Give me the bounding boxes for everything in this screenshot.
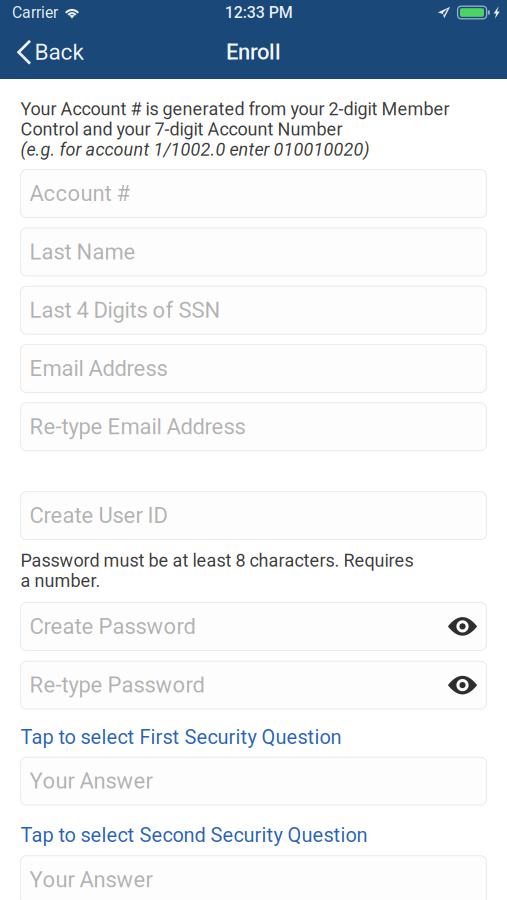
staticText: Create Password — [29, 613, 195, 639]
button[interactable]: Show Create Password — [447, 616, 477, 637]
button[interactable]: Tap to select Second Security Question — [20, 823, 486, 847]
staticText: Control and your 7-digit Account Number — [20, 119, 342, 140]
staticText: Enroll — [226, 39, 281, 65]
staticText: Your Answer — [29, 867, 152, 893]
staticText: Email Address — [29, 356, 167, 381]
staticText: Back — [34, 39, 83, 65]
staticText: Your Account # is generated from your 2-… — [20, 99, 449, 120]
button[interactable]: Show Re-type Password — [447, 675, 477, 695]
staticText: Last 4 Digits of SSN — [29, 297, 220, 323]
staticText: Re-type Email Address — [29, 414, 245, 440]
staticText: Last Name — [29, 239, 135, 265]
staticText: Account # — [29, 181, 130, 206]
staticText: a number. — [20, 570, 100, 591]
staticText: Your Answer — [29, 768, 152, 794]
staticText: Tap to select Second Security Question — [20, 823, 367, 847]
staticText: Carrier — [12, 3, 58, 22]
staticText: Tap to select First Security Question — [20, 725, 341, 749]
staticText: 12:33 PM — [225, 3, 293, 22]
staticText: (e.g. for account 1/1002.0 enter 0100100… — [20, 139, 369, 160]
button[interactable]: Tap to select First Security Question — [20, 725, 486, 749]
staticText: Re-type Password — [29, 672, 204, 698]
staticText: Create User ID — [29, 503, 167, 528]
staticText: Password must be at least 8 characters. … — [20, 550, 413, 571]
button[interactable]: Back — [0, 25, 95, 79]
